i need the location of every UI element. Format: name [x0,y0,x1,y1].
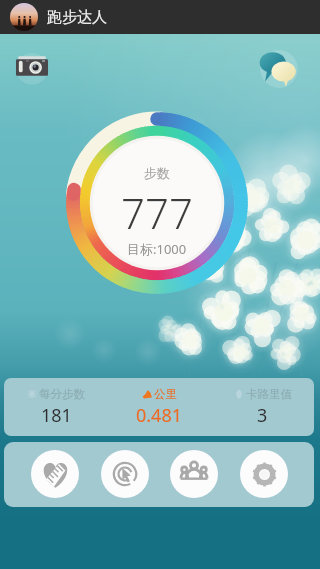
button[interactable]: Health records [31,450,79,498]
staticText: 3 [257,403,268,428]
staticText: 公里 [154,387,177,401]
button[interactable]: Messages [258,48,300,90]
button[interactable]: Profile [10,3,38,31]
staticText: 跑步达人 [47,8,107,27]
button[interactable]: 公里 [108,378,211,436]
staticText: 卡路里值 [246,387,292,401]
staticText: 每分步数 [39,387,85,401]
button[interactable]: 卡路里值 [211,378,314,436]
staticText: 0.481 [136,403,183,428]
button[interactable]: Friends [170,450,218,498]
staticText: 目标:1000 [127,240,187,258]
button[interactable]: Track run [101,450,149,498]
button[interactable]: Camera [14,50,50,86]
staticText: 777 [121,184,193,241]
staticText: 181 [41,403,72,428]
staticText: 步数 [144,165,170,181]
button[interactable]: Settings [240,450,288,498]
button[interactable]: 每分步数 [4,378,108,436]
